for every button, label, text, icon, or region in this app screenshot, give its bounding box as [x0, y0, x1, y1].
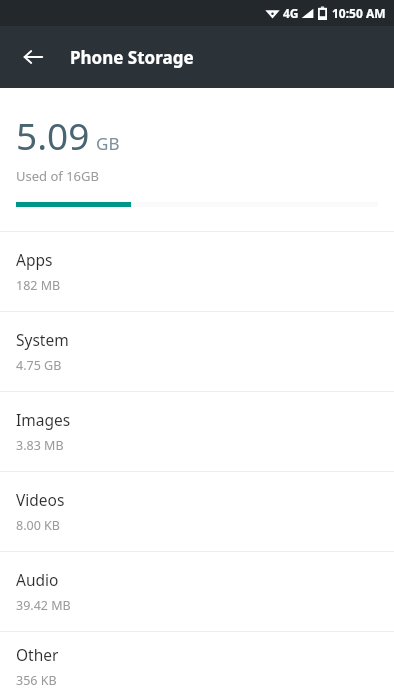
staticText: 4G: [283, 5, 299, 21]
staticText: GB: [96, 132, 120, 155]
staticText: 5.09: [16, 110, 90, 160]
staticText: 356 KB: [16, 672, 57, 689]
staticText: 8.00 KB: [16, 517, 60, 534]
staticText: 4.75 GB: [16, 357, 62, 374]
button[interactable]: Apps: [0, 232, 394, 311]
staticText: Apps: [16, 249, 53, 270]
staticText: Phone Storage: [70, 46, 194, 69]
button[interactable]: Videos: [0, 472, 394, 551]
button[interactable]: Other: [0, 632, 394, 700]
staticText: Videos: [16, 489, 65, 510]
button[interactable]: Images: [0, 392, 394, 471]
staticText: 182 MB: [16, 277, 61, 294]
staticText: 10:50 AM: [332, 5, 386, 21]
staticText: Audio: [16, 569, 59, 590]
staticText: 39.42 MB: [16, 597, 71, 614]
staticText: System: [16, 329, 69, 350]
button[interactable]: System: [0, 312, 394, 391]
staticText: 3.83 MB: [16, 437, 64, 454]
button[interactable]: Back: [11, 35, 55, 79]
staticText: Images: [16, 409, 71, 430]
staticText: Used of 16GB: [16, 167, 99, 185]
button[interactable]: Audio: [0, 552, 394, 631]
staticText: Other: [16, 644, 59, 665]
